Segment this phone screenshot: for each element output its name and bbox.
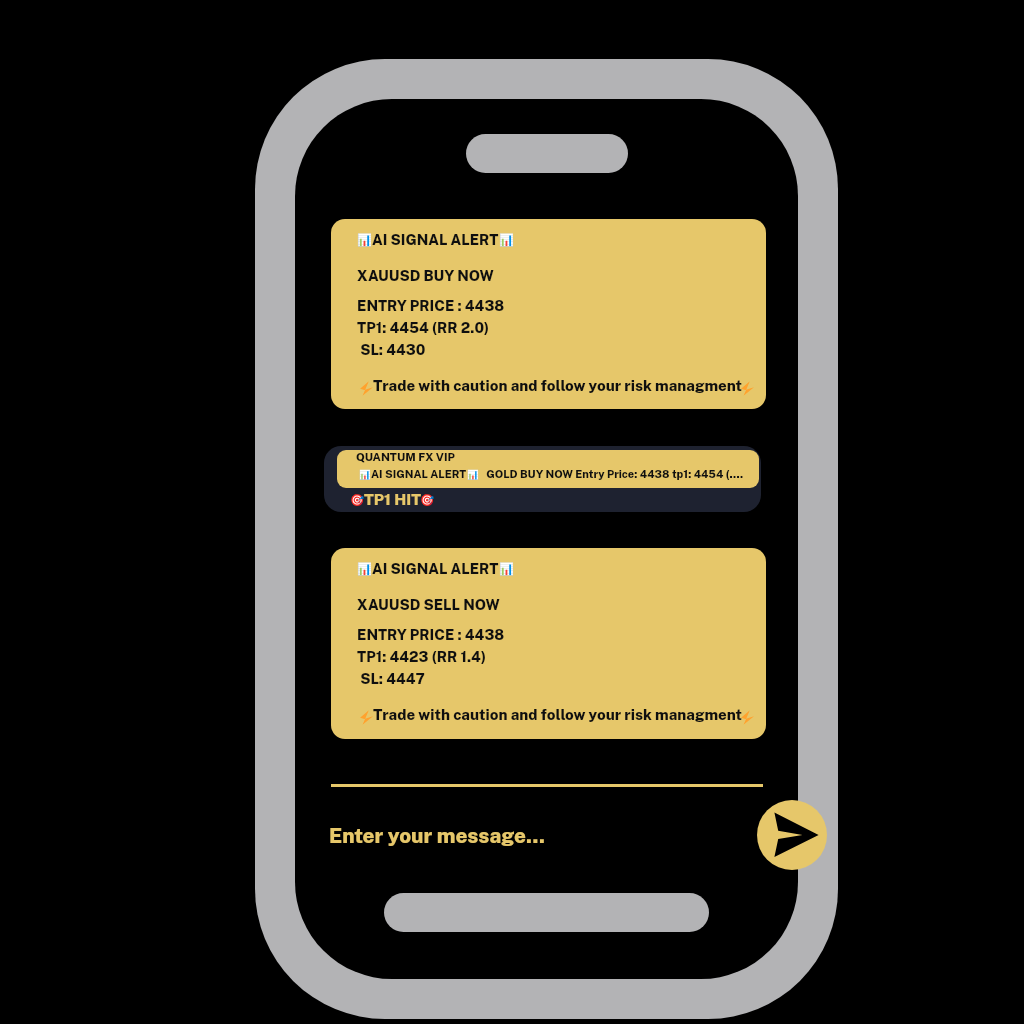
staticText: QUANTUM FX VIP [356,450,456,463]
staticText: AI SIGNAL ALERT [371,468,467,481]
staticText: XAUUSD SELL NOW [357,596,500,613]
staticText: 📊 [499,233,514,247]
button[interactable]: Enter your message... [326,815,626,855]
staticText: 📊 [359,469,371,480]
staticText: 🎯 [350,493,365,506]
staticText: 📊 [357,233,372,247]
button[interactable]: QUANTUM FX VIP [324,446,761,512]
staticText: 📊 [467,469,479,480]
staticText: GOLD BUY NOW Entry Price: 4438 tp1: 4454… [479,468,744,481]
staticText: ENTRY PRICE : 4438 [357,297,505,314]
staticText: 📊 [499,562,514,576]
staticText: SL: 4447 [357,670,425,687]
staticText: Trade with caution and follow your risk … [373,706,743,724]
staticText: TP1: 4454 (RR 2.0) [357,319,490,336]
button[interactable]: 📊 [331,548,766,739]
staticText: AI SIGNAL ALERT [372,231,499,248]
staticText: SL: 4430 [357,341,426,358]
staticText: ENTRY PRICE : 4438 [357,626,505,643]
staticText: TP1 HIT [364,490,422,508]
staticText: TP1: 4423 (RR 1.4) [357,648,486,665]
button[interactable]: QUANTUM FX VIP [337,450,759,488]
staticText: AI SIGNAL ALERT [372,560,499,577]
staticText: Enter your message... [329,823,545,847]
staticText: 🎯 [420,493,435,506]
button[interactable]: Send message [757,800,827,870]
staticText: XAUUSD BUY NOW [357,267,494,284]
staticText: Trade with caution and follow your risk … [373,377,743,395]
staticText: 📊 [357,562,372,576]
button[interactable]: 📊 [331,219,766,409]
